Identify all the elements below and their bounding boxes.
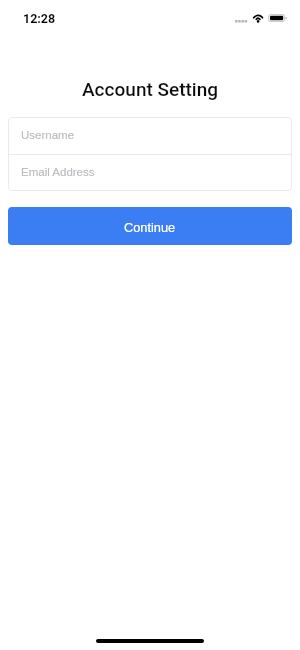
other: Wi-Fi bbox=[252, 14, 265, 23]
staticText: 12:28 bbox=[23, 11, 56, 26]
staticText: Account Setting bbox=[0, 78, 300, 100]
other: Home indicator bbox=[96, 639, 204, 643]
staticText: Continue bbox=[124, 220, 176, 234]
button[interactable]: Continue bbox=[8, 207, 292, 245]
other: Battery full bbox=[268, 14, 289, 23]
button[interactable]: Username bbox=[8, 117, 292, 154]
other: Cellular signal bbox=[235, 20, 248, 23]
staticText: Username bbox=[21, 129, 75, 142]
staticText: Email Address bbox=[21, 166, 95, 179]
button[interactable]: Email Address bbox=[8, 155, 292, 191]
